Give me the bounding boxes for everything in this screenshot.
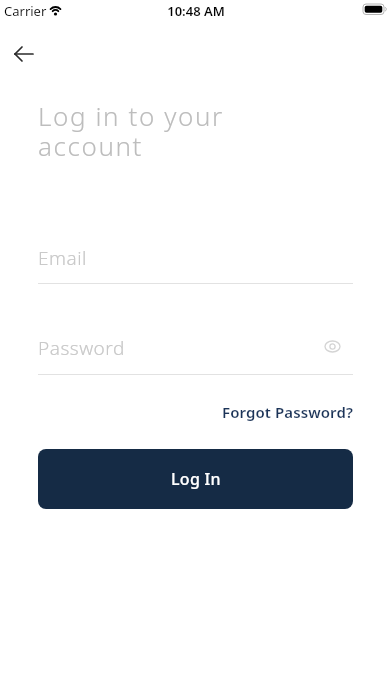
- button[interactable]: Forgot Password?: [200, 396, 353, 428]
- button[interactable]: Log In: [38, 449, 353, 509]
- staticText: Password: [38, 335, 125, 361]
- button[interactable]: [6, 36, 42, 72]
- staticText: 10:48 AM: [0, 2, 392, 20]
- staticText: Carrier: [4, 2, 47, 20]
- staticText: Log in to your account: [38, 98, 224, 164]
- staticText: Email: [38, 245, 87, 271]
- staticText: Forgot Password?: [222, 402, 353, 422]
- staticText: Log In: [171, 468, 221, 490]
- button[interactable]: [318, 332, 346, 360]
